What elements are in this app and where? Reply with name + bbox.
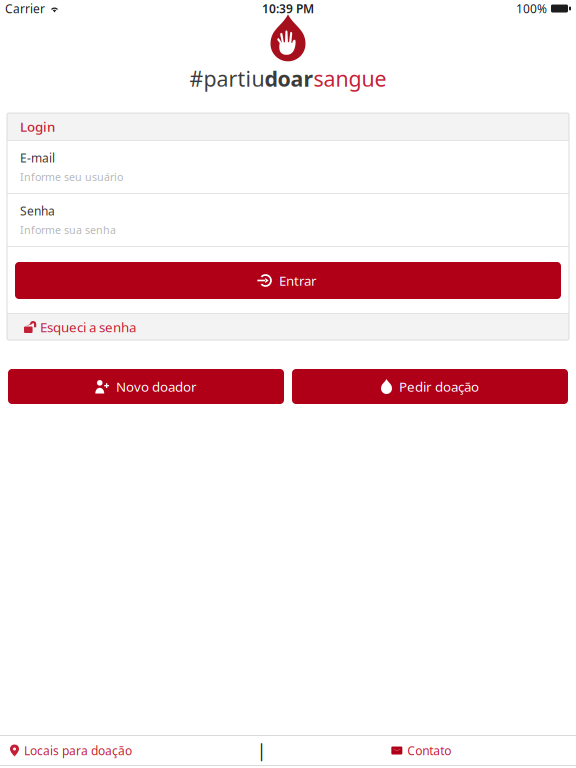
staticText: 100% [516,0,547,16]
button[interactable]: Entrar [15,262,561,299]
staticText: E-mail [20,150,55,166]
staticText: Senha [20,203,55,219]
button[interactable]: Pedir doação [292,369,568,404]
staticText: Contato [407,742,451,758]
staticText: doar [264,64,313,93]
button[interactable]: Locais para doação [0,736,142,765]
staticText: Carrier [5,0,45,16]
staticText: #partiu [189,64,264,93]
staticText: Informe seu usuário [20,170,123,184]
button[interactable]: Contato [381,736,461,765]
staticText: Locais para doação [24,742,132,758]
button[interactable]: Esqueci a senha [7,314,569,340]
staticText: | [257,739,267,762]
staticText: Login [20,118,55,135]
staticText: 10:39 PM [262,0,314,16]
staticText: Entrar [279,272,317,289]
staticText: Informe sua senha [20,223,116,237]
staticText: Esqueci a senha [40,318,136,336]
staticText: Novo doador [116,378,197,395]
staticText: Pedir doação [399,378,479,395]
button[interactable]: Novo doador [8,369,284,404]
staticText: sangue [313,64,386,93]
